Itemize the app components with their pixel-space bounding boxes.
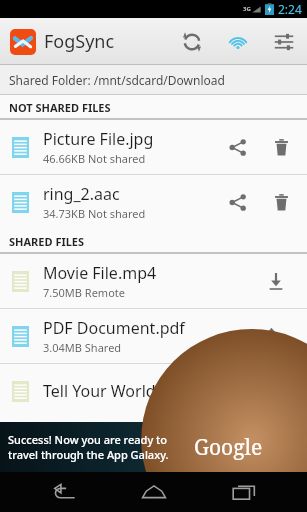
button[interactable]: Settings: [261, 19, 307, 65]
staticText: Movie File.mp4: [43, 262, 157, 284]
button[interactable]: PDF Document.pdf: [0, 309, 307, 363]
staticText: 7.50MB Remote: [43, 285, 125, 300]
button[interactable]: Share: [215, 180, 259, 224]
staticText: ring_2.aac: [43, 183, 120, 205]
button[interactable]: Download: [253, 258, 299, 304]
staticText: SHARED FILES: [9, 234, 85, 249]
button[interactable]: Home: [127, 472, 181, 512]
staticText: travel through the App Galaxy.: [8, 447, 169, 462]
button[interactable]: Movie File.mp4: [0, 254, 307, 308]
staticText: 34.73KB Not shared: [43, 206, 146, 221]
button[interactable]: Back: [36, 472, 90, 512]
staticText: 3.04MB Shared: [43, 340, 122, 355]
staticText: Success! Now you are ready to: [8, 432, 168, 447]
button[interactable]: Delete: [259, 180, 303, 224]
staticText: Google: [194, 433, 263, 462]
button[interactable]: Recents: [217, 472, 271, 512]
staticText: 46.66KB Not shared: [43, 151, 146, 166]
staticText: Tell Your World.mp4: [43, 380, 194, 402]
staticText: NOT SHARED FILES: [9, 100, 111, 115]
button[interactable]: Sync: [169, 19, 215, 65]
button[interactable]: Wifi: [215, 19, 261, 65]
button[interactable]: [8, 27, 38, 57]
button[interactable]: Delete: [259, 125, 303, 169]
staticText: 2:24: [278, 1, 302, 17]
button[interactable]: Picture File.jpg: [0, 120, 307, 174]
staticText: 3G: [243, 5, 251, 13]
staticText: Shared Folder: /mnt/sdcard/Download: [9, 72, 225, 88]
button[interactable]: ring_2.aac: [0, 175, 307, 229]
staticText: FogSync: [44, 29, 115, 54]
staticText: PDF Document.pdf: [43, 317, 185, 339]
button[interactable]: Share: [215, 125, 259, 169]
button[interactable]: Unshare: [253, 313, 299, 359]
button[interactable]: Tell Your World.mp4: [0, 364, 307, 418]
staticText: Picture File.jpg: [43, 128, 154, 150]
button[interactable]: Advertisement: [0, 422, 307, 472]
